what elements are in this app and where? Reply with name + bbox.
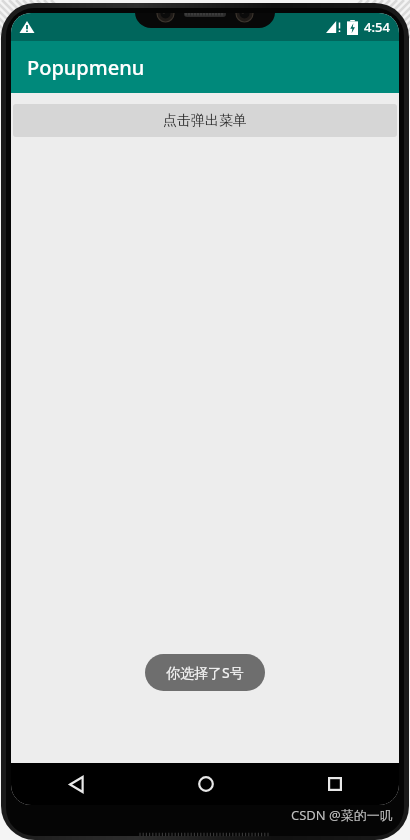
staticText: 你选择了S号 (166, 663, 244, 682)
button[interactable]: Home (141, 763, 270, 805)
other: Warning (19, 19, 35, 35)
staticText: CSDN @菜的一叽 (291, 806, 393, 824)
button[interactable]: Back (11, 763, 141, 805)
staticText: Popupmenu (27, 54, 145, 81)
staticText: 4:54 (364, 18, 390, 36)
staticText: 点击弹出菜单 (163, 112, 247, 130)
button[interactable]: Recent apps (270, 763, 399, 805)
button[interactable]: 点击弹出菜单 (13, 104, 397, 137)
